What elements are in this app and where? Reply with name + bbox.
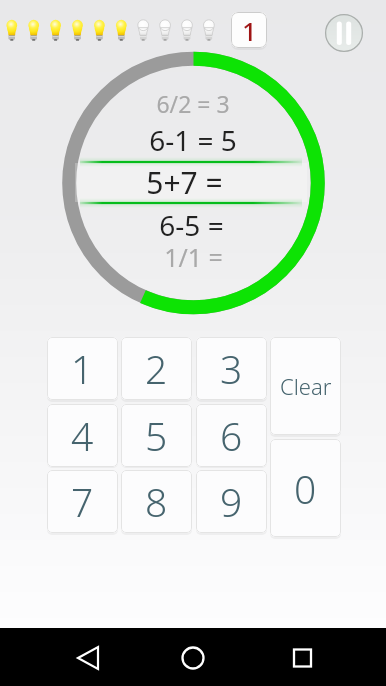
staticText: 6-5 = [159,206,224,244]
button[interactable]: 2 [121,337,192,400]
button[interactable] [325,14,363,52]
staticText: 1 [242,13,257,48]
button[interactable]: 4 [47,404,118,467]
button[interactable]: 1 [231,12,267,48]
staticText: 6 [220,409,243,462]
staticText: 6-1 = 5 [149,121,237,159]
staticText: 8 [145,475,168,528]
button[interactable]: 0 [270,439,341,537]
staticText: 7 [71,475,94,528]
button[interactable]: 9 [196,470,267,533]
staticText: 0 [294,462,317,515]
button[interactable]: Clear [270,337,341,435]
staticText: 9 [220,475,243,528]
button[interactable]: 7 [47,470,118,533]
staticText: 2 [145,342,168,395]
button[interactable]: 3 [196,337,267,400]
button[interactable]: 8 [121,470,192,533]
staticText: 6/2 = 3 [156,88,230,119]
button[interactable]: 6 [196,404,267,467]
staticText: 3 [220,342,243,395]
staticText: 5 [145,409,168,462]
staticText: 1/1 = [164,240,223,274]
staticText: 4 [71,409,94,462]
staticText: 5+7 = [146,162,223,203]
button[interactable]: 1 [47,337,118,400]
staticText: Clear [280,371,332,401]
button[interactable]: 5 [121,404,192,467]
staticText: 1 [71,342,94,395]
